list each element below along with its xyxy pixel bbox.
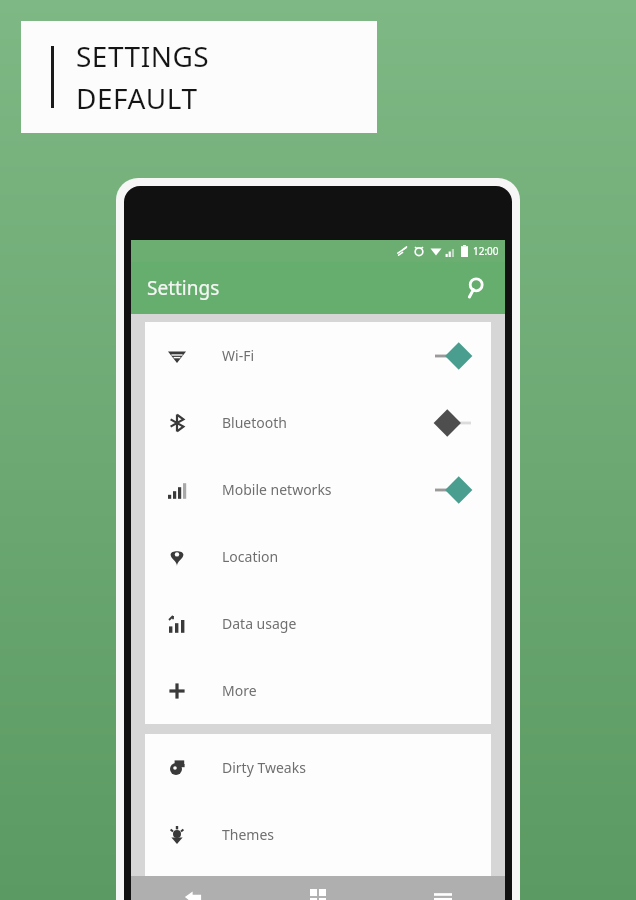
- staticText: Dirty Tweaks: [222, 758, 306, 777]
- button[interactable]: More: [145, 657, 491, 724]
- button[interactable]: Toggle on: [435, 345, 471, 367]
- staticText: DEFAULT: [76, 79, 198, 117]
- button[interactable]: Data usage: [145, 590, 491, 657]
- button[interactable]: Recents: [380, 876, 505, 900]
- button[interactable]: Wi-Fi: [145, 322, 491, 389]
- button[interactable]: Search: [455, 268, 495, 308]
- button[interactable]: Back: [131, 876, 255, 900]
- staticText: Settings: [147, 275, 220, 301]
- staticText: Bluetooth: [222, 413, 287, 432]
- staticText: SETTINGS: [76, 37, 210, 75]
- staticText: More: [222, 681, 257, 700]
- button[interactable]: Toggle on: [435, 479, 471, 501]
- staticText: Wi-Fi: [222, 346, 255, 365]
- button[interactable]: Toggle off: [435, 412, 471, 434]
- staticText: 12:00: [473, 244, 499, 258]
- button[interactable]: Home: [255, 876, 380, 900]
- staticText: Data usage: [222, 614, 297, 633]
- button[interactable]: Bluetooth: [145, 389, 491, 456]
- button[interactable]: Mobile networks: [145, 456, 491, 523]
- button[interactable]: Themes: [145, 801, 491, 868]
- button[interactable]: Location: [145, 523, 491, 590]
- button[interactable]: Dirty Tweaks: [145, 734, 491, 801]
- staticText: Location: [222, 547, 279, 566]
- staticText: Mobile networks: [222, 480, 332, 499]
- staticText: Themes: [222, 825, 275, 844]
